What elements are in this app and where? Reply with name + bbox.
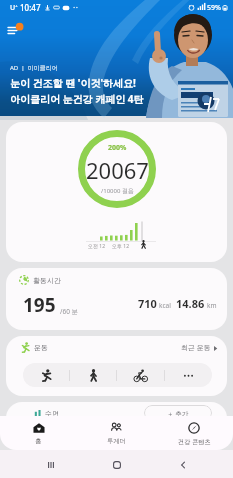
staticText: 20067 (86, 155, 149, 185)
button[interactable]: Recents (44, 458, 57, 471)
button[interactable]: 200% (6, 122, 227, 262)
button[interactable]: 투게더 (77, 416, 155, 450)
staticText: 건강 콘텐츠 (178, 437, 211, 445)
staticText: 활동시간 (33, 276, 61, 285)
staticText: 10:47 (20, 2, 41, 13)
button[interactable]: 수면 (6, 402, 227, 442)
button[interactable]: Running (23, 363, 69, 387)
staticText: 홈 (35, 437, 42, 445)
button[interactable]: More (165, 363, 212, 387)
staticText: 아이클리어 눈건강 캐페인 4탄 (10, 92, 144, 106)
staticText: U⁺ (10, 3, 18, 13)
button[interactable]: 건강 콘텐츠 (155, 416, 233, 450)
button[interactable]: 최근 운동 (181, 343, 218, 353)
staticText: 14.86 (176, 296, 205, 311)
staticText: 710 (138, 296, 157, 311)
staticText: 수면 (45, 409, 59, 418)
staticText: 59% (207, 3, 221, 13)
button[interactable]: Cycling (117, 363, 164, 387)
staticText: 투게더 (107, 437, 126, 445)
staticText: /10000 걸음 (101, 187, 134, 195)
button[interactable]: 홈 (0, 416, 77, 450)
button[interactable]: 활동시간 (6, 268, 227, 330)
staticText: 운동 (34, 343, 48, 352)
staticText: /60 분 (60, 307, 79, 316)
button[interactable]: Home (110, 458, 123, 471)
staticText: ＋ 추가 (167, 409, 189, 418)
button[interactable]: Walking (70, 363, 116, 387)
staticText: 200% (108, 143, 127, 153)
staticText: 눈이 건조할 땐 '이것'하세요! (10, 76, 136, 90)
button[interactable]: Back (176, 458, 189, 471)
button[interactable]: Menu (7, 22, 25, 40)
staticText: AD | 미미클리어 (10, 64, 58, 72)
staticText: 오전 12 (88, 243, 106, 250)
staticText: km (207, 301, 217, 310)
staticText: 195 (23, 292, 56, 318)
staticText: 최근 운동 (181, 343, 211, 353)
staticText: kcal (159, 301, 171, 310)
button[interactable]: ＋ 추가 (144, 405, 212, 421)
staticText: 오후 12 (112, 243, 130, 250)
